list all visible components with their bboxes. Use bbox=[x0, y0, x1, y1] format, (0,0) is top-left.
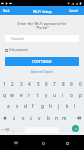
staticText: p bbox=[79, 92, 82, 98]
button[interactable]: Enter bbox=[72, 125, 79, 132]
staticText: t bbox=[37, 92, 39, 98]
button[interactable]: Advanced Options bbox=[31, 70, 54, 74]
staticText: d bbox=[24, 103, 27, 109]
button[interactable]: n bbox=[52, 112, 60, 123]
staticText: Password bbox=[11, 37, 24, 41]
button[interactable]: k bbox=[63, 100, 71, 111]
button[interactable]: q bbox=[0, 89, 8, 100]
button[interactable]: Hide password bbox=[5, 48, 79, 52]
staticText: e bbox=[20, 92, 23, 98]
button[interactable]: w bbox=[8, 89, 16, 100]
button[interactable]: Password bbox=[5, 35, 79, 42]
staticText: 6 bbox=[45, 81, 48, 87]
staticText: ?123 bbox=[1, 128, 6, 131]
staticText: k bbox=[66, 103, 69, 109]
button[interactable]: j bbox=[55, 100, 63, 111]
staticText: m bbox=[62, 115, 67, 121]
button[interactable]: CONTINUE bbox=[5, 57, 79, 66]
button[interactable]: Home bbox=[37, 137, 49, 149]
staticText: Back bbox=[3, 9, 10, 13]
button[interactable]: Recents bbox=[61, 137, 73, 149]
button[interactable]: Cancel bbox=[66, 7, 84, 15]
staticText: Enter the Wi-Fi password for "Portal" bbox=[4, 21, 80, 30]
button[interactable]: 1 bbox=[0, 78, 8, 89]
button[interactable]: m bbox=[60, 112, 68, 123]
staticText: 1 bbox=[3, 81, 6, 87]
button[interactable]: e bbox=[17, 89, 25, 100]
staticText: 5 bbox=[37, 81, 40, 87]
staticText: y bbox=[45, 92, 48, 98]
button[interactable]: Backspace bbox=[74, 112, 84, 123]
staticText: u bbox=[53, 92, 56, 98]
staticText: a bbox=[7, 103, 10, 109]
staticText: c bbox=[30, 115, 33, 121]
button[interactable]: 7 bbox=[50, 78, 58, 89]
button[interactable]: b bbox=[44, 112, 52, 123]
staticText: Hide password bbox=[9, 48, 28, 52]
button[interactable]: , bbox=[11, 124, 16, 135]
staticText: l bbox=[74, 103, 76, 109]
staticText: j bbox=[58, 103, 60, 109]
staticText: q bbox=[3, 92, 6, 98]
button[interactable]: Back bbox=[10, 137, 22, 149]
button[interactable]: c bbox=[27, 112, 35, 123]
button[interactable]: Back bbox=[0, 7, 13, 15]
button[interactable]: t bbox=[34, 89, 42, 100]
button[interactable]: i bbox=[59, 89, 67, 100]
button[interactable]: u bbox=[50, 89, 58, 100]
button[interactable]: 9 bbox=[67, 78, 75, 89]
staticText: v bbox=[38, 115, 41, 121]
button[interactable]: h bbox=[46, 100, 54, 111]
staticText: z bbox=[13, 115, 16, 121]
button[interactable]: 4 bbox=[25, 78, 33, 89]
button[interactable]: p bbox=[76, 89, 84, 100]
staticText: x bbox=[22, 115, 25, 121]
staticText: i bbox=[62, 92, 64, 98]
button[interactable]: z bbox=[10, 112, 18, 123]
button[interactable]: 3 bbox=[17, 78, 25, 89]
staticText: Cancel bbox=[69, 9, 78, 13]
staticText: 2 bbox=[11, 81, 14, 87]
button[interactable]: . bbox=[60, 124, 65, 135]
staticText: 9 bbox=[70, 81, 73, 87]
staticText: Wi-Fi Setup bbox=[33, 9, 52, 14]
button[interactable]: 0 bbox=[76, 78, 84, 89]
button[interactable]: v bbox=[35, 112, 43, 123]
staticText: r bbox=[28, 92, 30, 98]
button[interactable]: y bbox=[42, 89, 50, 100]
button[interactable]: 2 bbox=[8, 78, 16, 89]
staticText: n bbox=[55, 115, 58, 121]
staticText: 8 bbox=[62, 81, 65, 87]
button[interactable]: x bbox=[19, 112, 27, 123]
button[interactable]: 6 bbox=[42, 78, 50, 89]
staticText: 7 bbox=[53, 81, 56, 87]
staticText: w bbox=[10, 92, 14, 98]
button[interactable]: 5 bbox=[34, 78, 42, 89]
staticText: g bbox=[41, 103, 44, 109]
button[interactable]: f bbox=[29, 100, 37, 111]
staticText: 0 bbox=[79, 81, 82, 87]
button[interactable]: l bbox=[71, 100, 79, 111]
staticText: f bbox=[32, 103, 34, 109]
staticText: , bbox=[13, 127, 14, 132]
button[interactable]: 8 bbox=[59, 78, 67, 89]
button[interactable]: g bbox=[38, 100, 46, 111]
button[interactable]: ?123 bbox=[0, 124, 6, 135]
staticText: 4 bbox=[28, 81, 31, 87]
staticText: s bbox=[16, 103, 19, 109]
staticText: o bbox=[70, 92, 73, 98]
staticText: b bbox=[47, 115, 50, 121]
button[interactable]: o bbox=[67, 89, 75, 100]
button[interactable]: d bbox=[21, 100, 29, 111]
button[interactable]: r bbox=[25, 89, 33, 100]
staticText: 3 bbox=[20, 81, 23, 87]
staticText: h bbox=[49, 103, 52, 109]
button[interactable]: a bbox=[4, 100, 12, 111]
staticText: CONTINUE bbox=[32, 59, 52, 64]
button[interactable]: Shift bbox=[0, 112, 10, 123]
staticText: . bbox=[62, 127, 63, 132]
staticText: Advanced Options bbox=[31, 70, 54, 74]
button[interactable]: s bbox=[13, 100, 21, 111]
button[interactable]: Emoji bbox=[5, 124, 10, 135]
